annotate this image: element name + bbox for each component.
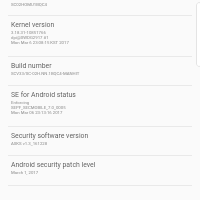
staticText: Security software version: [11, 132, 89, 140]
staticText: ASKS v1.3_161228: [11, 141, 48, 146]
staticText: Mon Mar 6 23:08:15 KST 2017: [11, 40, 69, 45]
button[interactable]: SE for Android status: [0, 86, 200, 126]
staticText: SC02HOMU1BQC4: [11, 2, 47, 7]
button[interactable]: Kernel version: [0, 16, 200, 56]
staticText: SE for Android status: [11, 91, 76, 99]
button[interactable]: Android security patch level: [0, 156, 200, 185]
staticText: 3.18.31-10851766: [11, 30, 46, 35]
button[interactable]: Baseband version: [0, 0, 200, 15]
staticText: Android security patch level: [11, 161, 96, 169]
staticText: SCV33/SC-02H.NN.1BQC4-MANHIT: [11, 71, 80, 76]
staticText: SEPF_SECMOBILE_7.0_0005: [11, 105, 66, 110]
button[interactable]: Build number: [0, 57, 200, 85]
staticText: Build number: [11, 62, 52, 70]
staticText: dpi@SWDG2917 #1: [11, 35, 49, 40]
staticText: Enforcing: [11, 100, 30, 105]
staticText: Kernel version: [11, 21, 55, 29]
staticText: Mon Mar 06 23:13:16 2017: [11, 110, 63, 115]
staticText: March 1, 2017: [11, 170, 39, 175]
button[interactable]: Security software version: [0, 127, 200, 155]
